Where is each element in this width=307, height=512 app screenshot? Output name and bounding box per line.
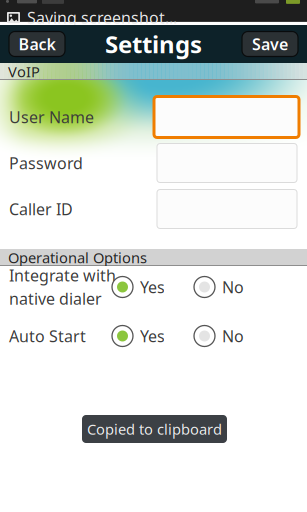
button[interactable]: Save xyxy=(242,31,298,56)
button[interactable]: No xyxy=(194,325,244,347)
staticText: Auto Start xyxy=(9,325,86,347)
staticText: Back xyxy=(18,33,55,55)
button[interactable]: Back xyxy=(9,31,65,56)
staticText: VoIP xyxy=(8,62,40,81)
staticText: Copied to clipboard xyxy=(87,419,222,439)
staticText: Caller ID xyxy=(9,198,73,220)
staticText: native dialer xyxy=(9,288,102,309)
staticText: Yes xyxy=(140,325,165,347)
staticText: No xyxy=(222,276,244,298)
button[interactable] xyxy=(154,96,299,137)
staticText: No xyxy=(222,325,244,347)
staticText: Integrate with xyxy=(9,265,116,286)
button[interactable]: No xyxy=(194,276,244,298)
staticText: Save xyxy=(252,33,288,55)
staticText: Saving screenshot... xyxy=(27,7,177,28)
staticText: Yes xyxy=(140,276,165,298)
staticText: Password xyxy=(9,152,83,174)
staticText: Settings xyxy=(105,28,202,60)
staticText: User Name xyxy=(9,106,94,128)
button[interactable]: Yes xyxy=(112,325,165,347)
button[interactable]: Yes xyxy=(112,276,165,298)
staticText: Operational Options xyxy=(8,248,147,267)
